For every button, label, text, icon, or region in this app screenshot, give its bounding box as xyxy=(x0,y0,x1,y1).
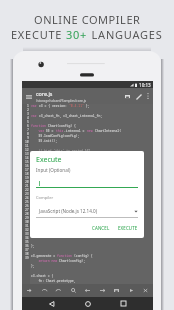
staticText: axis: { fn: Axis.prototype } xyxy=(31,224,98,228)
button[interactable]: Recents xyxy=(117,297,130,310)
staticText: 36 xyxy=(25,244,29,248)
staticText: }); xyxy=(31,184,52,188)
staticText: 27 xyxy=(25,208,29,212)
staticText: var xyxy=(31,129,46,133)
staticText: 2 xyxy=(27,108,29,112)
staticText: internal: { xyxy=(31,214,59,218)
staticText: $$.init(); xyxy=(31,139,57,143)
staticText: 19 xyxy=(25,176,29,180)
staticText: EXECUTE xyxy=(118,225,138,231)
button[interactable]: Save xyxy=(123,92,132,101)
staticText: c3.generate = xyxy=(31,254,57,258)
staticText: var xyxy=(31,114,39,118)
staticText: 35 xyxy=(25,240,29,244)
staticText: 39 xyxy=(25,256,29,260)
staticText: 38 xyxy=(25,252,29,256)
staticText: core.js xyxy=(36,90,53,97)
staticText: }; xyxy=(31,264,35,268)
staticText: (config) { xyxy=(74,254,93,258)
staticText: // bind 'this' to nested API xyxy=(31,149,91,153)
button[interactable]: Edit xyxy=(134,92,143,101)
staticText: Object xyxy=(46,159,58,163)
staticText: CANCEL xyxy=(92,225,110,231)
button[interactable]: CANCEL xyxy=(90,223,112,233)
staticText: }; xyxy=(31,234,35,238)
staticText: 30 xyxy=(25,220,29,224)
staticText: Chart(config) { xyxy=(48,124,76,128)
staticText: 11 xyxy=(25,144,29,148)
staticText: 3 xyxy=(27,112,29,116)
staticText: 12 xyxy=(25,148,29,152)
staticText: Compiler xyxy=(36,195,54,200)
staticText: } xyxy=(31,179,56,183)
button[interactable]: Move left xyxy=(82,284,93,297)
button[interactable]: Insert tab xyxy=(24,284,35,297)
staticText: 5 xyxy=(27,120,29,124)
button[interactable]: Menu xyxy=(24,92,33,101)
staticText: function xyxy=(57,254,74,258)
staticText: 24 xyxy=(25,196,29,200)
button[interactable]: Redo xyxy=(53,284,64,297)
staticText: 17 xyxy=(25,168,29,172)
staticText: EXECUTE xyxy=(11,27,66,42)
staticText: 15 xyxy=(25,160,29,164)
staticText: ( xyxy=(31,154,41,158)
staticText: var xyxy=(31,104,39,108)
button[interactable]: Run xyxy=(126,284,137,297)
staticText: ChartInternal( xyxy=(95,129,121,133)
staticText: 20 xyxy=(25,180,29,184)
button[interactable]: Search xyxy=(68,284,79,297)
staticText: 18 xyxy=(25,172,29,176)
staticText: this xyxy=(56,129,64,133)
staticText: LANGUAGES xyxy=(88,27,163,42)
staticText: "0.4.11" xyxy=(69,104,84,108)
button[interactable]: Close xyxy=(140,284,151,297)
staticText: 30+ xyxy=(66,27,88,42)
staticText: }; xyxy=(31,244,35,248)
button[interactable]: More options xyxy=(144,92,152,100)
button[interactable]: Undo xyxy=(39,284,50,297)
staticText: 25 xyxy=(25,200,29,204)
staticText: 9 xyxy=(27,136,29,140)
staticText: 28 xyxy=(25,212,29,216)
staticText: 10 xyxy=(25,140,29,144)
staticText: 4 xyxy=(27,116,29,120)
staticText: function xyxy=(41,154,58,158)
staticText: c3_chart_fn, c3_chart_internal_fn; xyxy=(39,114,103,118)
staticText: 37 xyxy=(25,248,29,252)
staticText: 32 xyxy=(25,228,29,232)
staticText: .keys(fn).forEach( xyxy=(58,159,92,163)
button[interactable]: Home xyxy=(81,297,94,310)
staticText: $$.loadConfig(config); xyxy=(31,134,80,138)
staticText: 8 xyxy=(27,132,29,136)
staticText: $$ = xyxy=(46,129,56,133)
staticText: 13 xyxy=(25,152,29,156)
staticText: Execute xyxy=(36,155,62,165)
button[interactable]: Back xyxy=(45,297,58,310)
button[interactable]: Save xyxy=(111,284,122,297)
staticText: 6 xyxy=(27,124,29,128)
button[interactable]: Move right xyxy=(97,284,108,297)
staticText: JavaScript (Node.js 12.14.0) xyxy=(39,208,98,214)
staticText: 31 xyxy=(25,224,29,228)
staticText: 34 xyxy=(25,236,29,240)
staticText: Object xyxy=(61,169,73,173)
staticText: fn: Chart.prototype, xyxy=(31,279,76,283)
staticText: new xyxy=(87,129,95,133)
staticText: 22 xyxy=(25,188,29,192)
staticText: if ( xyxy=(31,169,61,173)
staticText: 23 xyxy=(25,192,29,196)
staticText: 21 xyxy=(25,184,29,188)
button[interactable]: EXECUTE xyxy=(116,223,140,233)
staticText: fn: Chart.prototype, xyxy=(31,209,76,213)
staticText: 1 xyxy=(27,104,29,108)
